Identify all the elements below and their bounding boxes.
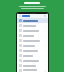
- button[interactable]: Open item: [17, 48, 48, 53]
- button[interactable]: Search: [44, 15, 46, 17]
- button[interactable]: Open item: [17, 18, 48, 23]
- button[interactable]: Open item: [17, 28, 48, 33]
- button[interactable]: Open item: [17, 43, 48, 48]
- button[interactable]: Open item: [17, 68, 48, 72]
- button[interactable]: Open item: [17, 33, 48, 38]
- button[interactable]: Open item: [17, 53, 48, 58]
- button[interactable]: Open item: [17, 63, 48, 68]
- button[interactable]: Open item: [17, 23, 48, 28]
- button[interactable]: Open item: [17, 38, 48, 43]
- button[interactable]: Open item: [17, 58, 48, 63]
